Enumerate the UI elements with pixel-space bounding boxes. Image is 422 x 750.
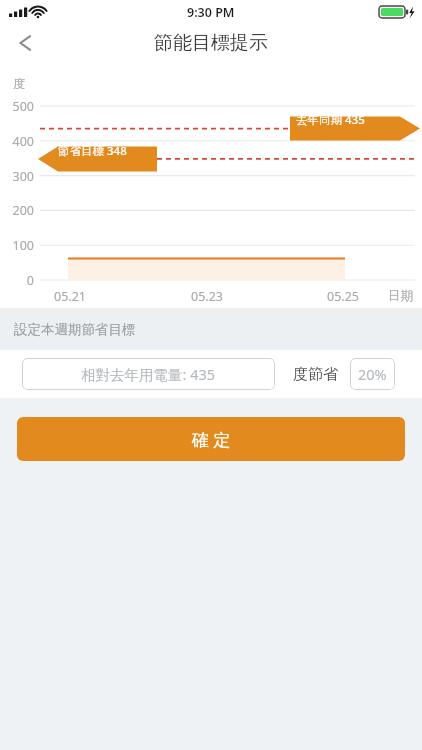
staticText: 節能目標提示 <box>154 31 268 55</box>
button[interactable]: Back <box>0 24 48 61</box>
staticText: 0 <box>0 272 34 289</box>
staticText: 20% <box>358 364 387 384</box>
staticText: 500 <box>0 98 34 115</box>
staticText: 200 <box>0 202 34 219</box>
staticText: 300 <box>0 168 34 185</box>
button[interactable]: 20% <box>350 358 395 390</box>
staticText: 100 <box>0 237 34 254</box>
button[interactable]: 相對去年用電量: 435 <box>22 358 275 390</box>
staticText: 設定本週期節省目標 <box>14 321 136 338</box>
staticText: 05.23 <box>185 288 229 305</box>
staticText: 05.25 <box>321 288 365 305</box>
staticText: 確 定 <box>192 428 231 451</box>
staticText: 相對去年用電量: 435 <box>81 364 216 384</box>
staticText: 400 <box>0 133 34 150</box>
button[interactable]: 確 定 <box>17 417 405 461</box>
staticText: 度 <box>13 76 26 92</box>
staticText: 05.21 <box>48 288 92 305</box>
staticText: 日期 <box>388 288 413 304</box>
staticText: 度節省 <box>293 365 338 384</box>
staticText: 去年同期 435 <box>296 112 365 128</box>
staticText: 節省目標 348 <box>58 143 127 159</box>
staticText: 9:30 PM <box>187 4 235 21</box>
